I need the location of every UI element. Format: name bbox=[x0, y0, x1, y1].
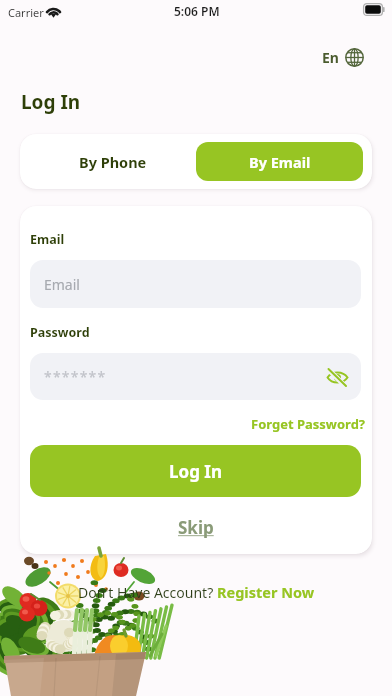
button[interactable]: Log In bbox=[30, 445, 361, 497]
button[interactable]: Forget Password? bbox=[249, 412, 368, 436]
other: Battery bbox=[363, 3, 385, 16]
other: Language bbox=[345, 48, 364, 67]
staticText: 5:06 PM bbox=[174, 3, 220, 19]
staticText: Don't Have Account? bbox=[78, 583, 217, 602]
staticText: Log In bbox=[21, 89, 81, 115]
staticText: Register Now bbox=[217, 582, 315, 602]
staticText: By Phone bbox=[79, 152, 147, 172]
staticText: Password bbox=[30, 324, 90, 341]
staticText: Carrier bbox=[8, 5, 44, 20]
staticText: Email bbox=[44, 275, 80, 294]
button[interactable]: Email bbox=[30, 260, 361, 308]
staticText: ******* bbox=[44, 367, 107, 386]
button[interactable]: Skip bbox=[174, 514, 218, 541]
button[interactable]: By Phone bbox=[29, 142, 196, 181]
button[interactable]: By Email bbox=[196, 142, 363, 181]
staticText: Email bbox=[30, 231, 65, 248]
button[interactable]: ******* bbox=[30, 353, 361, 400]
button[interactable]: En bbox=[317, 43, 369, 72]
staticText: Log In bbox=[169, 460, 222, 483]
button[interactable]: Show password bbox=[321, 361, 353, 393]
staticText: En bbox=[322, 48, 339, 67]
button[interactable]: Don't Have Account? bbox=[76, 580, 317, 604]
staticText: By Email bbox=[249, 152, 311, 172]
